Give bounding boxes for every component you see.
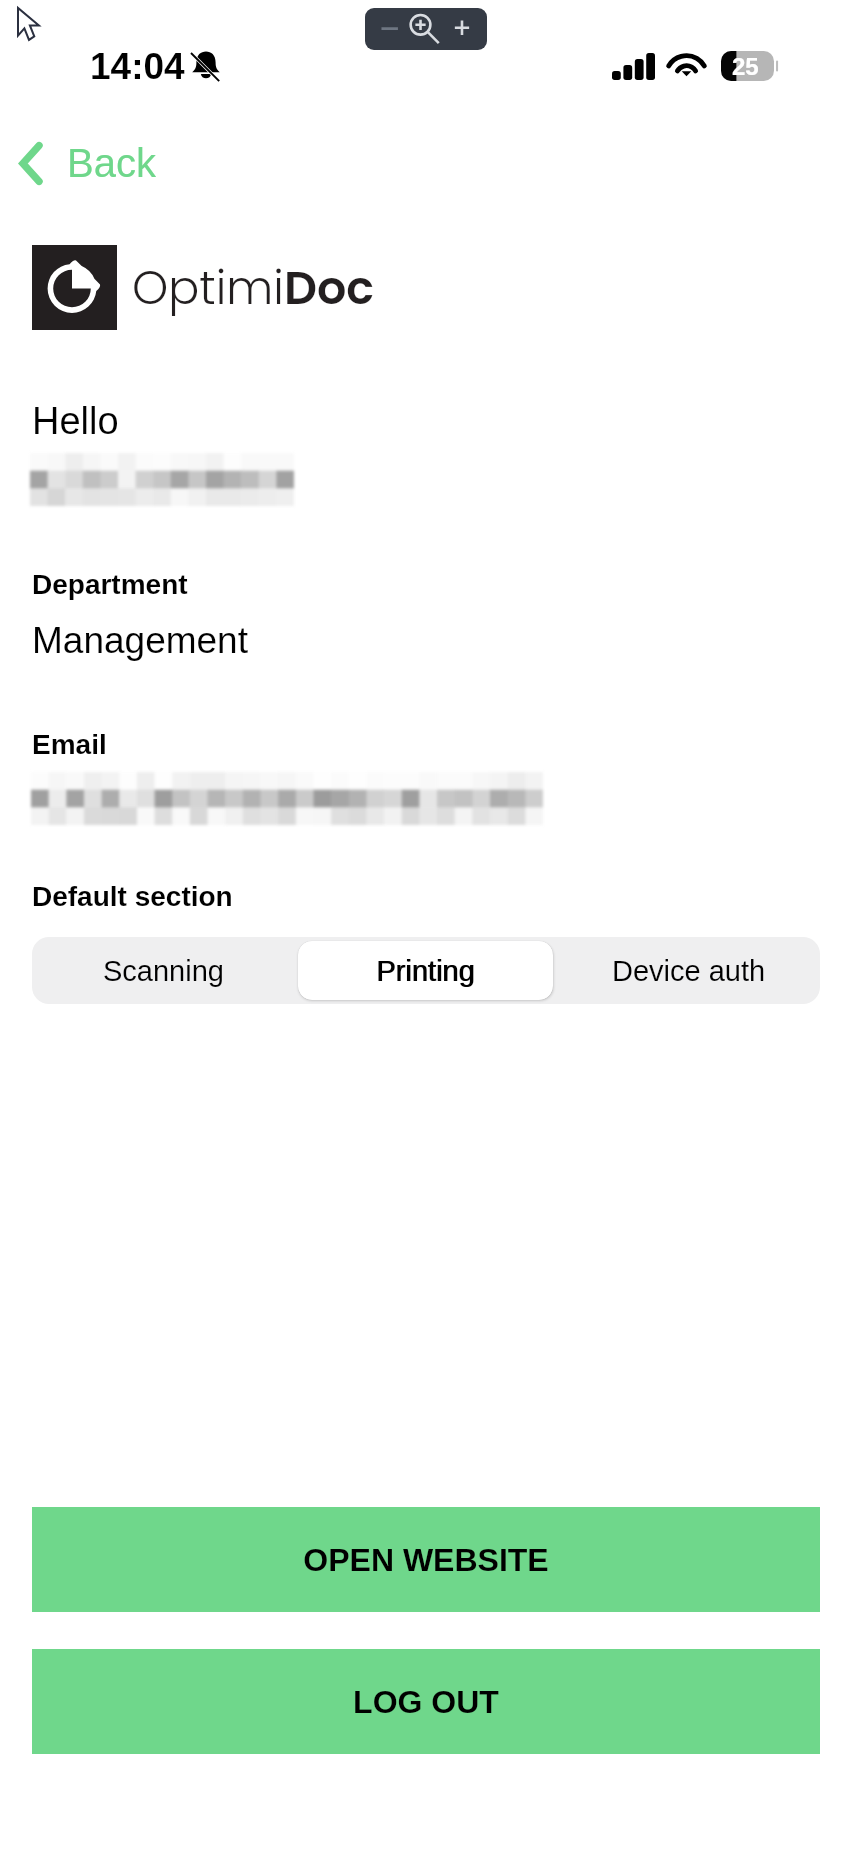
staticText: Doc — [284, 256, 375, 320]
staticText: Scanning — [103, 955, 224, 987]
button[interactable]: LOG OUT — [32, 1649, 820, 1754]
button[interactable]: OPEN WEBSITE — [32, 1507, 820, 1612]
button[interactable]: Device auth — [561, 941, 816, 1000]
button[interactable]: Back — [20, 129, 156, 197]
staticText: Department — [32, 569, 188, 600]
staticText: Device auth — [612, 955, 766, 987]
staticText: Email — [32, 729, 107, 760]
staticText: 14:04 — [90, 46, 185, 87]
staticText: Default section — [32, 881, 233, 912]
staticText: OPEN WEBSITE — [303, 1542, 549, 1578]
button[interactable]: Printing — [298, 941, 553, 1000]
staticText: 25 — [732, 53, 759, 80]
staticText: Optimi — [132, 256, 284, 320]
other: Back — [20, 141, 42, 186]
staticText: LOG OUT — [353, 1684, 499, 1720]
staticText: Management — [32, 620, 248, 661]
staticText: Printing — [376, 955, 475, 987]
button[interactable]: Scanning — [36, 941, 290, 1000]
staticText: Printing — [377, 955, 476, 987]
staticText: Back — [67, 141, 156, 186]
staticText: Hello — [32, 400, 119, 442]
